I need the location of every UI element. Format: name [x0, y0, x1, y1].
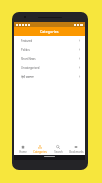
button[interactable]: Bookmarks: [67, 144, 85, 155]
button[interactable]: Short News: [14, 54, 85, 63]
button[interactable]: Featured: [14, 36, 85, 45]
staticText: हिंदी समाचार: [21, 75, 34, 79]
staticText: Featured: [21, 39, 33, 43]
staticText: Uncategorized: [21, 66, 40, 70]
button[interactable]: Politics: [14, 45, 85, 54]
staticText: Search: [54, 150, 63, 154]
button[interactable]: Categories: [31, 144, 49, 155]
staticText: Home: [19, 150, 27, 154]
staticText: Politics: [21, 48, 30, 52]
staticText: Short News: [21, 57, 36, 61]
button[interactable]: Home: [14, 144, 31, 155]
staticText: Categories: [33, 150, 47, 154]
staticText: Categories: [40, 29, 59, 34]
button[interactable]: Search: [49, 144, 67, 155]
button[interactable]: हिंदी समाचार: [14, 72, 85, 81]
staticText: Bookmarks: [69, 150, 84, 154]
button[interactable]: Uncategorized: [14, 63, 85, 72]
